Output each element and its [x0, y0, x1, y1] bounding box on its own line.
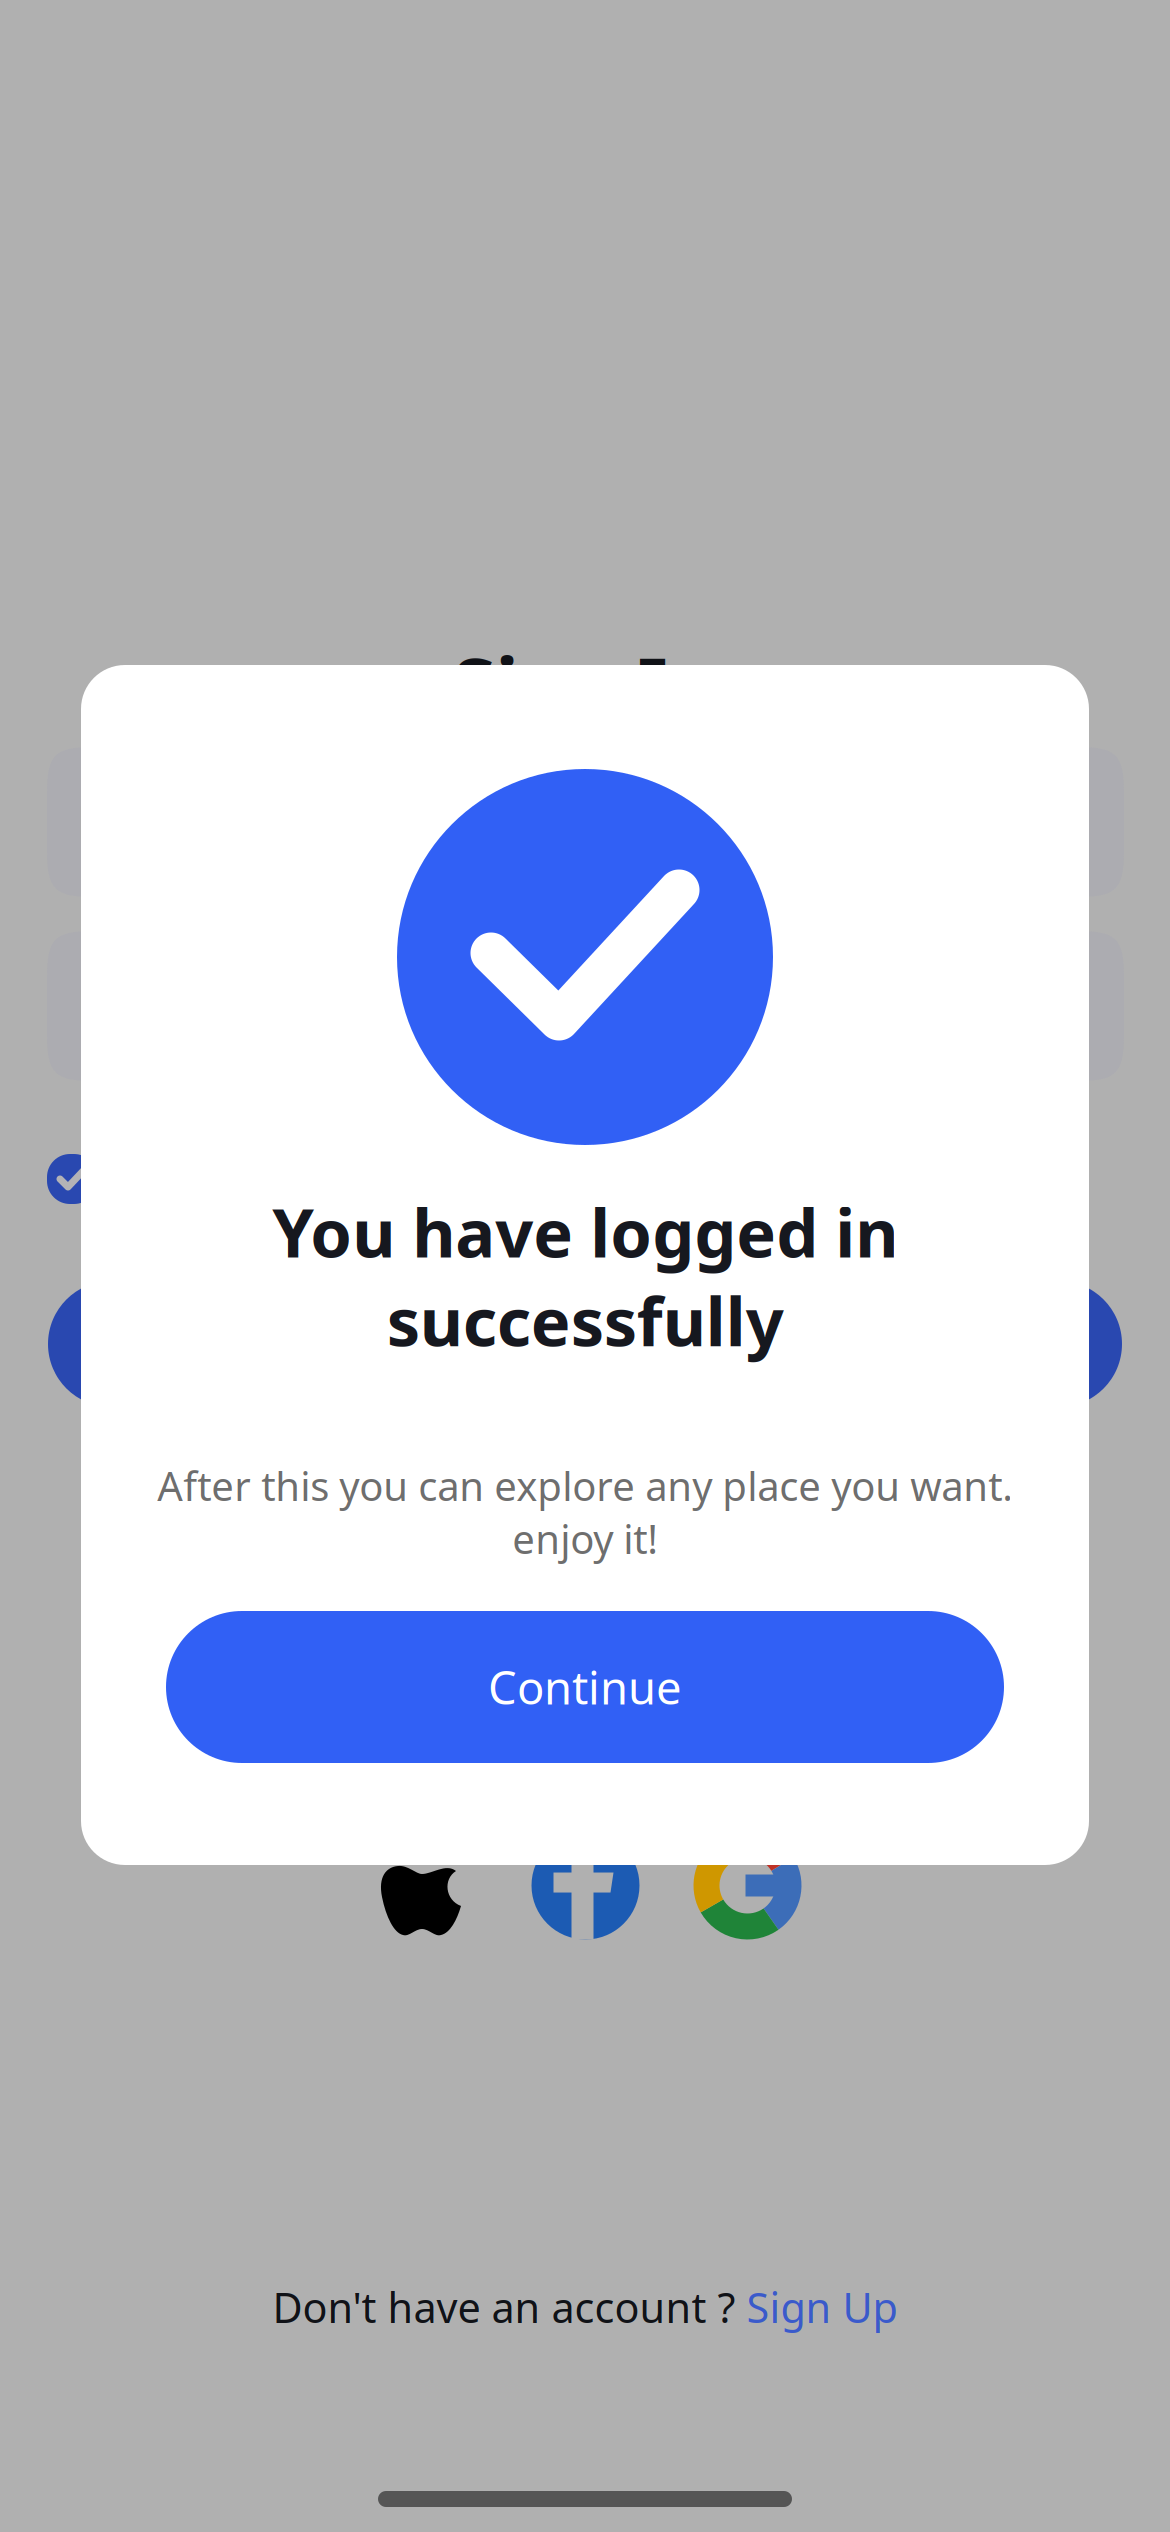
- staticText: Sign In: [452, 633, 717, 735]
- staticText: You have logged in successfully: [272, 1187, 898, 1365]
- button[interactable]: Continue with Apple: [377, 1831, 471, 1939]
- button[interactable]: Email: [47, 747, 1124, 897]
- button[interactable]: Sign In: [48, 1281, 1122, 1407]
- button[interactable]: Password: [47, 931, 1124, 1081]
- button[interactable]: Remember me: [47, 1153, 385, 1205]
- staticText: Sign In: [506, 1312, 664, 1376]
- button[interactable]: Sign Up: [746, 2280, 897, 2334]
- staticText: Sign Up: [746, 2280, 897, 2334]
- staticText: After this you can explore any place you…: [157, 1459, 1013, 1565]
- staticText: Password: [77, 976, 282, 1036]
- staticText: Continue: [488, 1657, 682, 1717]
- button[interactable]: Continue with Facebook: [531, 1831, 639, 1939]
- button[interactable]: Continue with Google: [693, 1831, 801, 1939]
- button[interactable]: Continue: [166, 1611, 1004, 1763]
- staticText: or continue with: [432, 1493, 738, 1546]
- staticText: Email: [77, 792, 193, 852]
- staticText: Don't have an account ?: [272, 2280, 746, 2334]
